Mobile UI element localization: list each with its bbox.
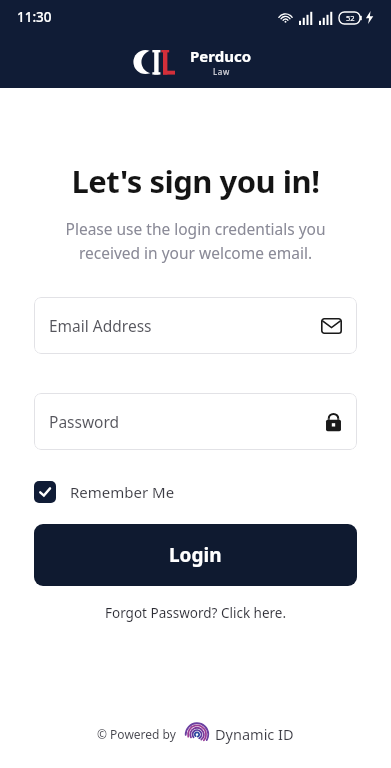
button[interactable]: Login [34, 524, 357, 586]
staticText: Password [49, 411, 120, 432]
staticText: 11:30 [17, 8, 52, 26]
staticText: Dynamic ID [215, 724, 294, 744]
staticText: Please use the login credentials you rec… [34, 218, 357, 263]
staticText: Law [213, 66, 230, 77]
staticText: Email Address [49, 315, 152, 336]
button[interactable]: Forgot Password? Click here. [95, 600, 297, 626]
staticText: © Powered by [97, 726, 176, 742]
staticText: Let's sign you in! [0, 160, 391, 202]
button[interactable]: Password [34, 393, 357, 450]
other: Dynamic ID logo [185, 722, 209, 746]
staticText: Remember Me [70, 482, 175, 502]
other: Email [321, 318, 342, 334]
staticText: Perduco [190, 46, 252, 66]
staticText: Login [169, 542, 222, 568]
button[interactable]: Remember Me [34, 481, 175, 503]
other: Password [325, 411, 342, 432]
staticText: 52 [346, 13, 355, 23]
staticText: Forgot Password? Click here. [105, 604, 287, 622]
button[interactable]: Email Address [34, 297, 357, 354]
